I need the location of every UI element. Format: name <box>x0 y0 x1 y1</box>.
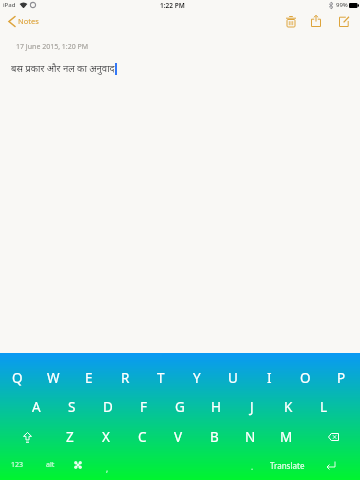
staticText: Z <box>66 428 74 446</box>
staticText: V <box>174 428 183 446</box>
button[interactable]: T <box>143 365 179 391</box>
button[interactable]: J <box>234 394 270 420</box>
button[interactable]: Y <box>179 365 215 391</box>
button[interactable]: G <box>162 394 198 420</box>
button[interactable]: D <box>90 394 126 420</box>
button[interactable]: R <box>107 365 143 391</box>
button[interactable]: Notes <box>8 9 39 33</box>
staticText: 123 <box>11 460 24 470</box>
staticText: R <box>121 369 130 387</box>
staticText: S <box>68 398 76 416</box>
button[interactable]: I <box>251 365 287 391</box>
staticText: , <box>106 463 109 474</box>
button[interactable] <box>66 452 89 478</box>
button[interactable] <box>336 13 352 29</box>
staticText: D <box>103 398 113 416</box>
button[interactable] <box>317 452 345 478</box>
staticText: C <box>138 428 147 446</box>
button[interactable]: N <box>232 424 268 450</box>
staticText: U <box>228 369 238 387</box>
button[interactable]: Z <box>52 424 88 450</box>
staticText: बस प्रकार और नल का अनुवाद <box>11 62 115 75</box>
staticText: N <box>245 428 256 446</box>
button[interactable]: S <box>54 394 90 420</box>
button[interactable] <box>120 452 240 478</box>
staticText: . <box>251 461 254 472</box>
staticText: P <box>337 369 346 387</box>
staticText: W <box>47 369 60 387</box>
staticText: X <box>102 428 110 446</box>
button[interactable]: F <box>126 394 162 420</box>
staticText: F <box>140 398 148 416</box>
button[interactable]: P <box>323 365 359 391</box>
staticText: Y <box>193 369 201 387</box>
staticText: alt <box>46 460 55 470</box>
button[interactable]: L <box>306 394 342 420</box>
button[interactable]: V <box>160 424 196 450</box>
button[interactable]: K <box>270 394 306 420</box>
button[interactable]: C <box>124 424 160 450</box>
staticText: O <box>300 369 311 387</box>
button[interactable]: O <box>287 365 323 391</box>
staticText: iPad <box>3 1 16 9</box>
button[interactable]: 123 <box>4 452 31 478</box>
button[interactable]: W <box>35 365 71 391</box>
button[interactable] <box>283 13 299 29</box>
button[interactable]: E <box>71 365 107 391</box>
button[interactable]: Translate <box>261 452 314 478</box>
staticText: G <box>175 398 185 416</box>
staticText: H <box>211 398 222 416</box>
button[interactable]: , <box>96 452 120 478</box>
button[interactable]: M <box>268 424 304 450</box>
button[interactable] <box>12 424 42 450</box>
button[interactable] <box>318 424 348 450</box>
staticText: J <box>250 398 254 416</box>
staticText: M <box>280 428 293 446</box>
button[interactable]: A <box>18 394 54 420</box>
staticText: 17 June 2015, 1:20 PM <box>16 42 89 52</box>
button[interactable]: U <box>215 365 251 391</box>
staticText: I <box>267 369 272 387</box>
button[interactable]: B <box>196 424 232 450</box>
staticText: E <box>85 369 93 387</box>
staticText: L <box>320 398 328 416</box>
staticText: K <box>284 398 293 416</box>
button[interactable]: alt <box>37 452 63 478</box>
staticText: Translate <box>270 460 305 471</box>
staticText: B <box>210 428 219 446</box>
staticText: Notes <box>18 16 39 26</box>
button[interactable]: Q <box>0 365 35 391</box>
button[interactable]: . <box>243 452 267 478</box>
staticText: A <box>32 398 41 416</box>
staticText: Q <box>12 369 23 387</box>
staticText: 1:22 PM <box>160 1 185 10</box>
button[interactable]: X <box>88 424 124 450</box>
button[interactable] <box>308 13 324 29</box>
button[interactable]: H <box>198 394 234 420</box>
staticText: T <box>157 369 165 387</box>
staticText: 99% <box>336 1 348 9</box>
